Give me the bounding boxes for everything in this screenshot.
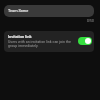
staticText: 0/50 — [87, 19, 94, 23]
button[interactable]: Toggle invitation link — [78, 37, 92, 45]
button[interactable]: Team Some — [4, 5, 94, 17]
staticText: Users with an invitation link can join t… — [8, 40, 78, 48]
button[interactable]: Invitation link — [4, 31, 94, 52]
staticText: Team Some — [8, 8, 29, 12]
staticText: Invitation link — [8, 34, 32, 39]
